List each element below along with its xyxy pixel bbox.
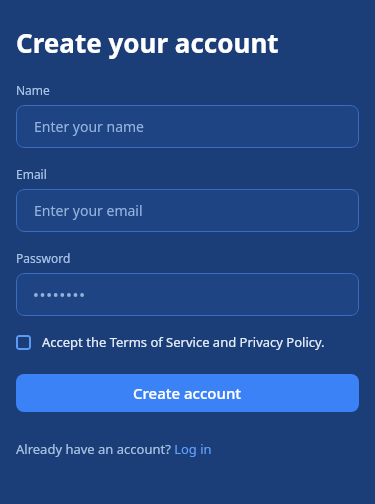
button[interactable] <box>16 273 359 316</box>
other: Accept terms checkbox <box>16 335 31 350</box>
staticText: Already have an account? Log in <box>16 440 212 458</box>
button[interactable]: Enter your email <box>16 189 359 232</box>
staticText: Enter your email <box>34 201 143 220</box>
staticText: Enter your name <box>34 117 144 136</box>
staticText: Email <box>16 166 47 182</box>
button[interactable]: Accept terms checkbox <box>16 333 359 351</box>
staticText: Password <box>16 250 71 266</box>
staticText: Name <box>16 82 50 98</box>
button[interactable]: Enter your name <box>16 105 359 148</box>
button[interactable]: Create account <box>16 374 359 412</box>
staticText: Accept the Terms of Service and Privacy … <box>42 333 325 351</box>
staticText: Create account <box>133 383 242 403</box>
staticText: Create your account <box>16 25 279 60</box>
button[interactable]: Already have an account? Log in <box>16 440 212 458</box>
